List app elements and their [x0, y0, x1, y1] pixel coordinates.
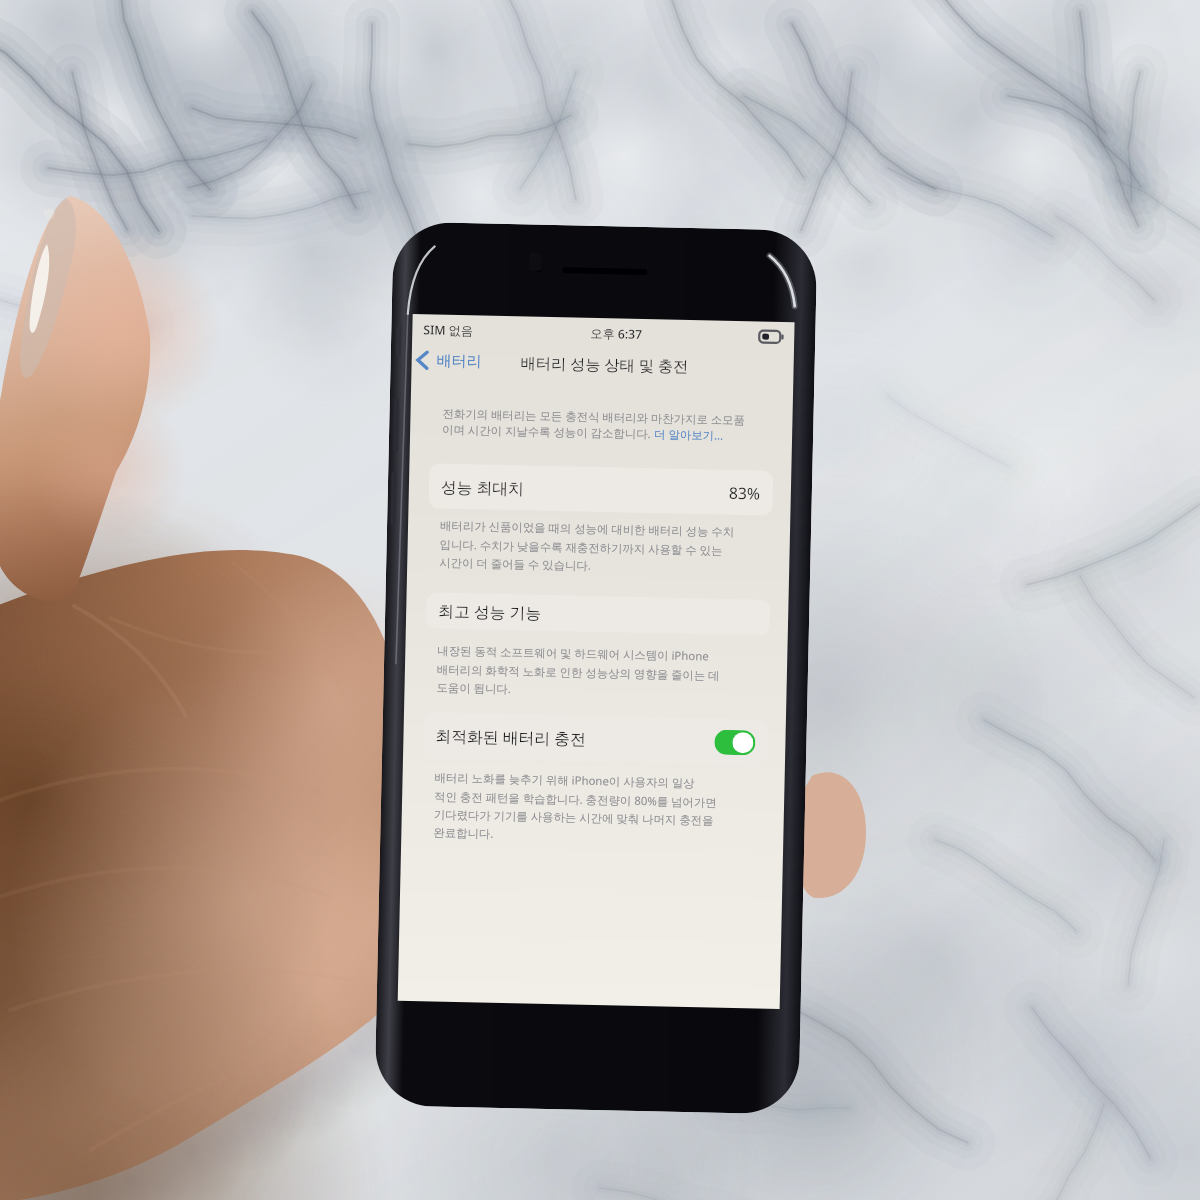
staticText: 성능 최대치 [441, 476, 525, 499]
staticText: 배터리 [436, 351, 482, 371]
button[interactable]: 최고 성능 기능 [426, 592, 770, 636]
button[interactable]: 더 알아보기... [654, 426, 724, 444]
button[interactable]: 최적화된 배터리 충전 [423, 712, 768, 766]
staticText: 83% [729, 482, 761, 505]
staticText: 이며 시간이 지날수록 성능이 감소합니다. [442, 422, 654, 442]
staticText: 배터리가 신품이었을 때의 성능에 대비한 배터리 성능 수치 입니다. 수치가… [439, 518, 735, 576]
staticText: 오후 6:37 [590, 325, 642, 343]
button[interactable]: 배터리 [411, 346, 492, 376]
staticText: 배터리 성능 상태 및 충전 [520, 352, 689, 377]
button[interactable]: 성능 최대치 [428, 463, 773, 516]
staticText: 배터리 노화를 늦추기 위해 iPhone이 사용자의 일상 적인 충전 패턴을… [433, 769, 718, 846]
staticText: 전화기의 배터리는 모든 충전식 배터리와 마찬가지로 소모품 [442, 406, 746, 428]
button[interactable]: 최적화된 배터리 충전 켜기 [714, 730, 756, 755]
staticText: 최고 성능 기능 [438, 599, 541, 624]
staticText: 최적화된 배터리 충전 [435, 724, 587, 750]
staticText: 내장된 동적 소프트웨어 및 하드웨어 시스템이 iPhone 배터리의 화학적… [436, 642, 720, 701]
staticText: SIM 없음 [423, 321, 474, 339]
